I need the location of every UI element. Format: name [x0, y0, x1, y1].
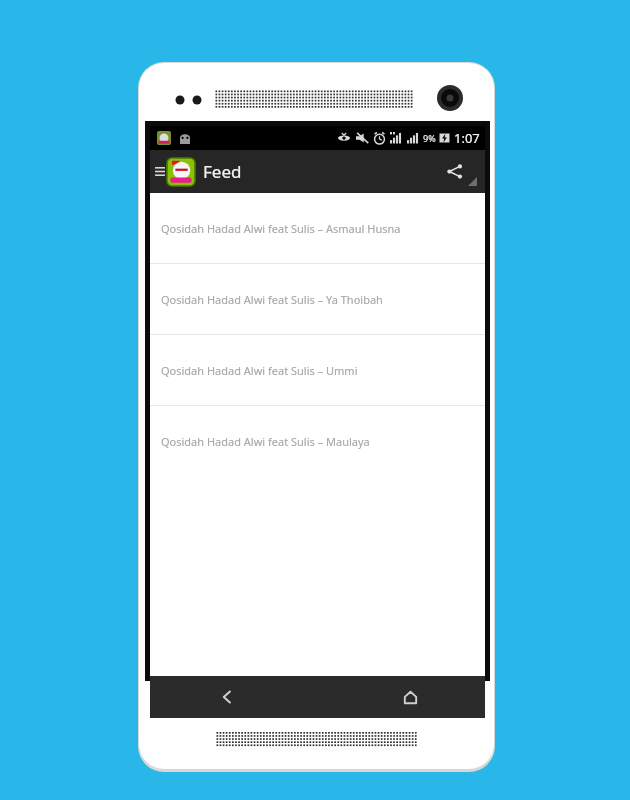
button[interactable]: Open navigation drawer [153, 150, 166, 193]
button[interactable]: Back [204, 676, 249, 718]
staticText: Qosidah Hadad Alwi feat Sulis – Ummi [161, 363, 358, 378]
staticText: Qosidah Hadad Alwi feat Sulis – Maulaya [161, 434, 370, 449]
staticText: Qosidah Hadad Alwi feat Sulis – Ya Thoib… [161, 292, 383, 307]
button[interactable]: Qosidah Hadad Alwi feat Sulis – Ya Thoib… [150, 264, 485, 334]
button[interactable]: App logo [167, 158, 195, 186]
staticText: Qosidah Hadad Alwi feat Sulis – Asmaul H… [161, 221, 401, 236]
button[interactable]: Qosidah Hadad Alwi feat Sulis – Ummi [150, 335, 485, 405]
button[interactable]: Qosidah Hadad Alwi feat Sulis – Asmaul H… [150, 193, 485, 263]
button[interactable]: Qosidah Hadad Alwi feat Sulis – Maulaya [150, 406, 485, 476]
staticText: Feed [203, 160, 242, 183]
button[interactable]: Home [388, 676, 433, 718]
staticText: 9% [423, 132, 436, 144]
button[interactable]: Share [434, 150, 474, 193]
staticText: 1:07 [454, 129, 480, 147]
